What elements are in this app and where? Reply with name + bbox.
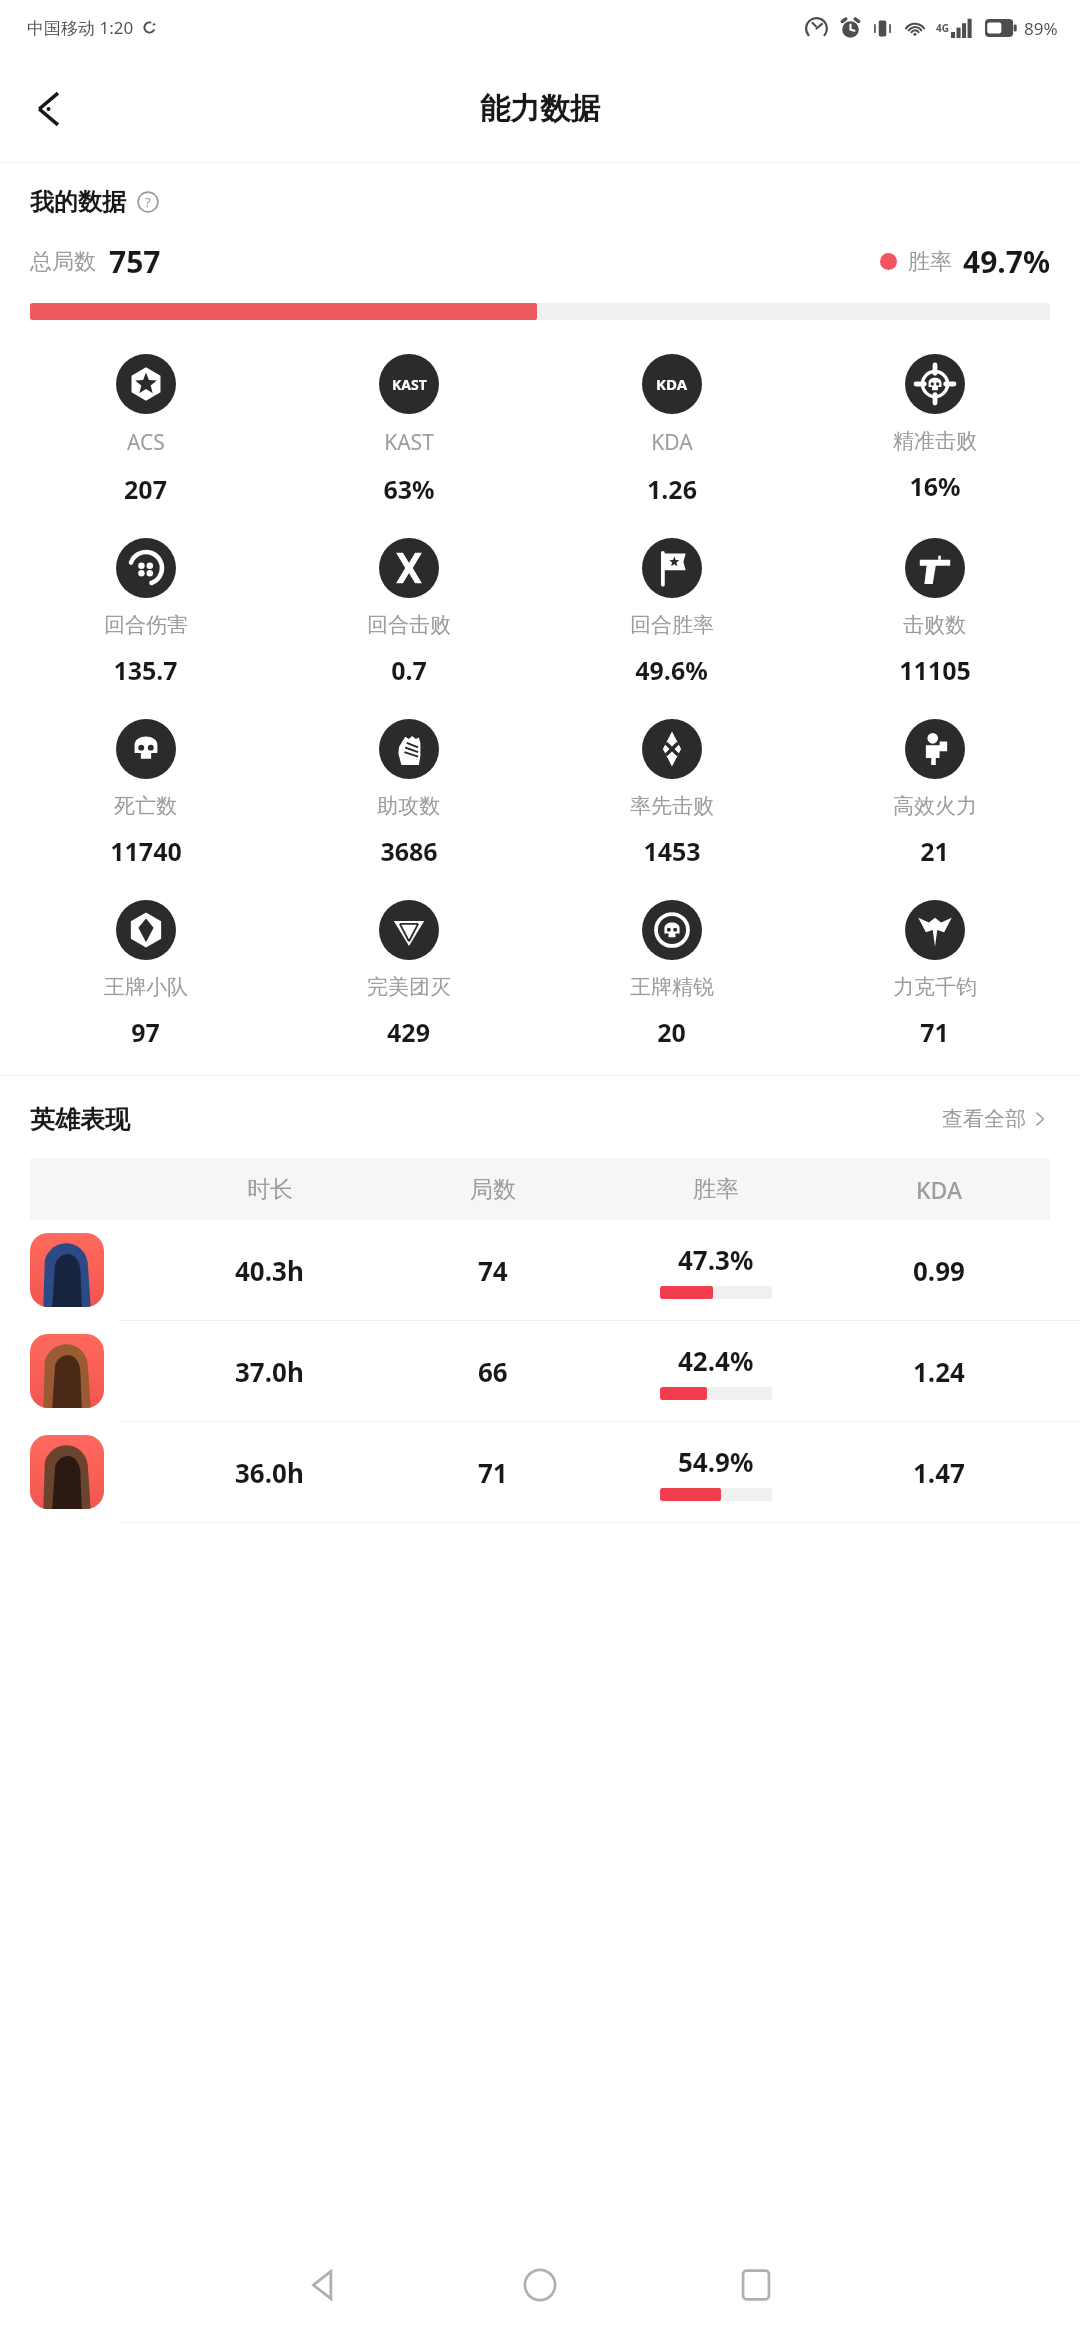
staticText: 63% bbox=[383, 472, 435, 506]
button[interactable]: 36.0h bbox=[30, 1422, 1050, 1522]
staticText: 击败数 bbox=[903, 612, 966, 638]
button[interactable]: 回合击败 bbox=[277, 538, 540, 687]
button[interactable]: 击败数 bbox=[803, 538, 1066, 687]
staticText: 757 bbox=[109, 241, 161, 282]
staticText: 207 bbox=[124, 472, 167, 506]
staticText: 49.6% bbox=[635, 653, 708, 687]
button[interactable]: 回合胜率 bbox=[540, 538, 803, 687]
staticText: 11105 bbox=[899, 653, 971, 687]
button[interactable]: 王牌小队 bbox=[14, 900, 277, 1049]
button[interactable]: 精准击败 bbox=[803, 354, 1066, 503]
button[interactable]: 死亡数 bbox=[14, 719, 277, 868]
staticText: 完美团灭 bbox=[367, 974, 451, 1000]
staticText: 0.99 bbox=[913, 1253, 965, 1288]
staticText: KAST bbox=[384, 428, 434, 457]
staticText: 回合胜率 bbox=[630, 612, 714, 638]
staticText: 局数 bbox=[470, 1175, 516, 1204]
button[interactable]: 回合伤害 bbox=[14, 538, 277, 687]
staticText: 助攻数 bbox=[377, 793, 440, 819]
staticText: 4G bbox=[936, 21, 949, 35]
button[interactable]: 力克千钧 bbox=[803, 900, 1066, 1049]
staticText: 37.0h bbox=[235, 1354, 304, 1389]
staticText: 21 bbox=[920, 834, 949, 868]
staticText: 49.7% bbox=[963, 241, 1050, 282]
staticText: 英雄表现 bbox=[30, 1104, 130, 1135]
staticText: 1.24 bbox=[913, 1354, 965, 1389]
staticText: 1453 bbox=[643, 834, 701, 868]
staticText: 1.26 bbox=[647, 472, 697, 506]
button[interactable]: 完美团灭 bbox=[277, 900, 540, 1049]
staticText: 11740 bbox=[110, 834, 182, 868]
staticText: 胜率 bbox=[693, 1175, 739, 1204]
button[interactable]: 40.3h bbox=[30, 1220, 1050, 1320]
staticText: 死亡数 bbox=[114, 793, 177, 819]
staticText: 1.47 bbox=[913, 1455, 965, 1490]
button[interactable]: 说明 bbox=[135, 189, 161, 215]
staticText: ? bbox=[145, 193, 151, 211]
button[interactable]: KAST bbox=[277, 354, 540, 506]
staticText: 高效火力 bbox=[893, 793, 977, 819]
staticText: 40.3h bbox=[235, 1253, 304, 1288]
staticText: 54.9% bbox=[678, 1444, 754, 1479]
staticText: 王牌精锐 bbox=[630, 974, 714, 1000]
staticText: 97 bbox=[131, 1015, 160, 1049]
button[interactable]: 高效火力 bbox=[803, 719, 1066, 868]
staticText: KAST bbox=[392, 375, 427, 394]
staticText: 36.0h bbox=[235, 1455, 304, 1490]
button[interactable]: 返回 bbox=[216, 2230, 432, 2340]
staticText: 王牌小队 bbox=[104, 974, 188, 1000]
staticText: 回合击败 bbox=[367, 612, 451, 638]
staticText: 16% bbox=[909, 469, 961, 503]
staticText: 66 bbox=[478, 1354, 508, 1389]
staticText: 查看全部 bbox=[942, 1106, 1026, 1132]
staticText: KDA bbox=[651, 428, 693, 457]
staticText: 0.7 bbox=[391, 653, 427, 687]
staticText: 71 bbox=[920, 1015, 949, 1049]
staticText: 力克千钧 bbox=[893, 974, 977, 1000]
button[interactable]: 查看全部 bbox=[938, 1102, 1052, 1136]
staticText: 74 bbox=[478, 1253, 508, 1288]
staticText: KDA bbox=[656, 374, 688, 394]
button[interactable]: ACS bbox=[14, 354, 277, 506]
staticText: KDA bbox=[916, 1174, 962, 1205]
button[interactable]: 37.0h bbox=[30, 1321, 1050, 1421]
staticText: 总局数 bbox=[30, 248, 96, 276]
staticText: 时长 bbox=[247, 1175, 293, 1204]
staticText: 20 bbox=[657, 1015, 686, 1049]
staticText: 429 bbox=[387, 1015, 430, 1049]
staticText: 3686 bbox=[380, 834, 438, 868]
button[interactable]: 返回 bbox=[18, 77, 82, 141]
button[interactable]: KDA bbox=[540, 354, 803, 506]
staticText: 中国移动 1:20 bbox=[27, 16, 134, 39]
staticText: 率先击败 bbox=[630, 793, 714, 819]
staticText: 47.3% bbox=[678, 1242, 754, 1277]
staticText: 胜率 bbox=[908, 248, 952, 276]
staticText: 42.4% bbox=[678, 1343, 754, 1378]
staticText: 71 bbox=[478, 1455, 508, 1490]
button[interactable]: 王牌精锐 bbox=[540, 900, 803, 1049]
staticText: 135.7 bbox=[113, 653, 178, 687]
button[interactable]: 最近任务 bbox=[648, 2230, 864, 2340]
staticText: ACS bbox=[127, 428, 165, 457]
button[interactable]: 助攻数 bbox=[277, 719, 540, 868]
button[interactable]: 主页 bbox=[432, 2230, 648, 2340]
staticText: 回合伤害 bbox=[104, 612, 188, 638]
staticText: 我的数据 bbox=[30, 187, 126, 217]
staticText: 精准击败 bbox=[893, 428, 977, 454]
button[interactable]: 率先击败 bbox=[540, 719, 803, 868]
staticText: 89% bbox=[1024, 17, 1058, 40]
staticText: 能力数据 bbox=[480, 90, 600, 128]
